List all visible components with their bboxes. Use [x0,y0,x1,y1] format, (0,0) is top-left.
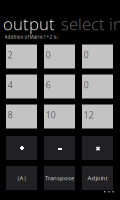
staticText: output [3,12,55,35]
button[interactable]: Determinant [6,166,37,190]
button[interactable]: output [3,12,55,35]
staticText: 2 [8,49,13,61]
button[interactable]: Multiply [82,136,113,160]
button[interactable]: Subtract [44,136,75,160]
staticText: 0 [84,79,89,91]
button[interactable]: Adjoint [82,166,113,190]
staticText: 0 [46,49,51,61]
staticText: Adjoint [87,174,107,182]
staticText: Transpose [45,174,74,182]
staticText: select in [61,12,120,35]
staticText: 6 [46,79,51,91]
staticText: |A| [16,174,26,182]
staticText: Addition of Matrix 1+2 is : [5,34,59,40]
staticText: 8 [8,109,13,121]
button[interactable]: select in [61,12,120,35]
staticText: 4 [8,79,13,91]
button[interactable]: More [104,191,118,197]
button[interactable]: Transpose [44,166,75,190]
staticText: 10 [46,109,56,121]
staticText: 0 [84,49,89,61]
staticText: 12 [84,109,94,121]
button[interactable]: Add [6,136,37,160]
